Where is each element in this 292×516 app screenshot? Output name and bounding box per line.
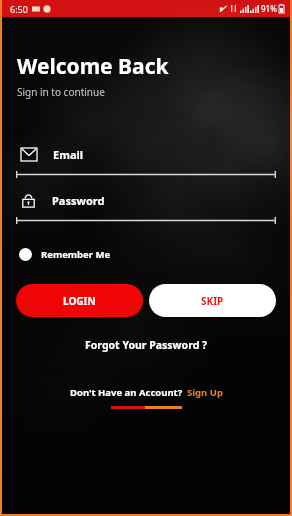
button[interactable]: Password: [21, 193, 275, 208]
other: Password: [21, 193, 36, 208]
button[interactable]: SKIP: [149, 284, 276, 317]
button[interactable]: Remember Me: [17, 246, 113, 263]
staticText: 91%: [261, 3, 277, 14]
staticText: Forgot Your Password ?: [85, 338, 208, 352]
other: Email: [21, 148, 37, 161]
staticText: SKIP: [201, 294, 224, 308]
staticText: Welcome Back: [17, 52, 169, 81]
staticText: Password: [52, 193, 105, 208]
staticText: 6:50: [10, 3, 28, 15]
staticText: Remember Me: [41, 248, 111, 261]
button[interactable]: Email: [21, 147, 275, 162]
staticText: Email: [53, 147, 84, 162]
button[interactable]: LOGIN: [16, 284, 143, 317]
staticText: Sign in to continue: [17, 85, 105, 99]
staticText: LOGIN: [63, 294, 96, 308]
staticText: Sign Up: [187, 386, 223, 399]
button[interactable]: Forgot Your Password ?: [77, 334, 216, 356]
staticText: Don't Have an Account?: [70, 386, 183, 399]
button[interactable]: Sign Up: [187, 386, 223, 399]
